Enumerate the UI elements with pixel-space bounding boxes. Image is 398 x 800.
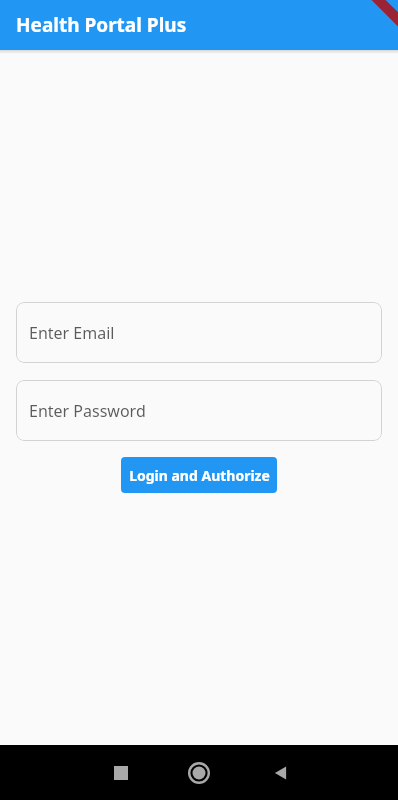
- button[interactable]: Enter Password: [16, 380, 382, 441]
- button[interactable]: Back: [264, 756, 298, 790]
- button[interactable]: Recent apps: [104, 756, 138, 790]
- staticText: Enter Password: [29, 400, 146, 422]
- staticText: Login and Authorize: [129, 466, 270, 485]
- staticText: Health Portal Plus: [16, 12, 187, 38]
- button[interactable]: Login and Authorize: [121, 457, 277, 493]
- staticText: Enter Email: [29, 322, 115, 344]
- button[interactable]: Home: [182, 756, 216, 790]
- button[interactable]: Enter Email: [16, 302, 382, 363]
